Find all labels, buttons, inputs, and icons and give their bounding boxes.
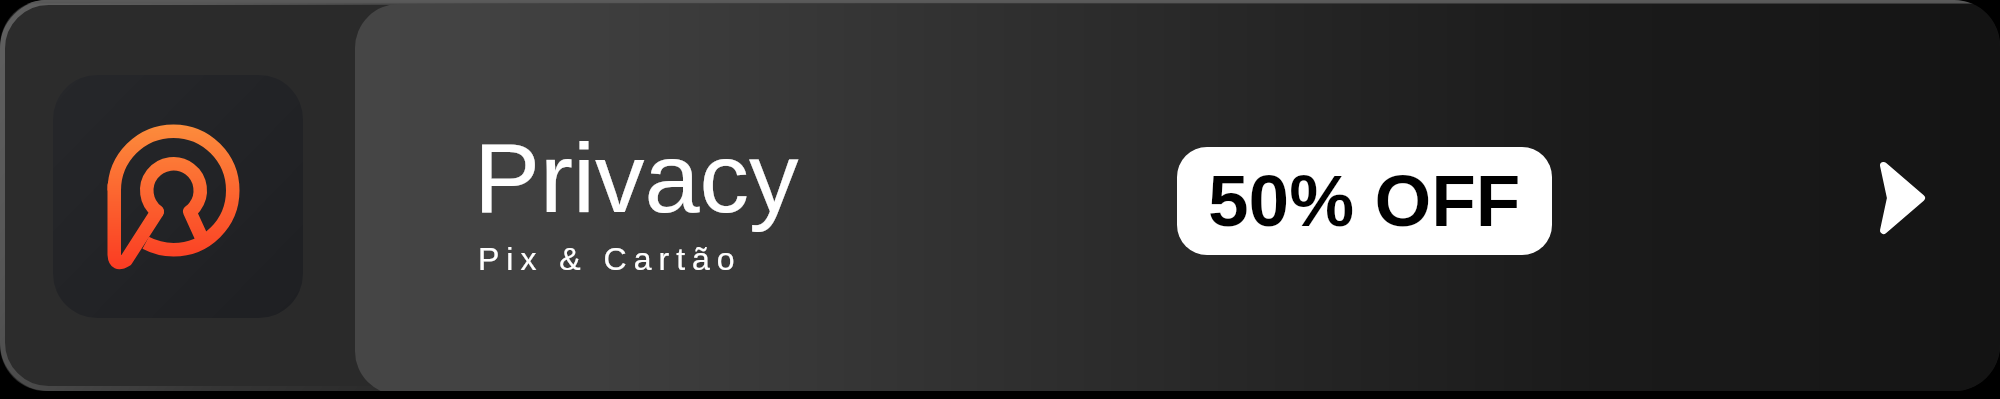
button[interactable]: 50% OFF [1177,147,1552,255]
staticText: 50% OFF [1208,160,1521,242]
button[interactable]: Open [1852,142,1952,253]
staticText: Privacy [474,122,799,233]
button[interactable]: Privacy [0,0,2000,391]
staticText: Pix & Cartão [478,241,742,277]
